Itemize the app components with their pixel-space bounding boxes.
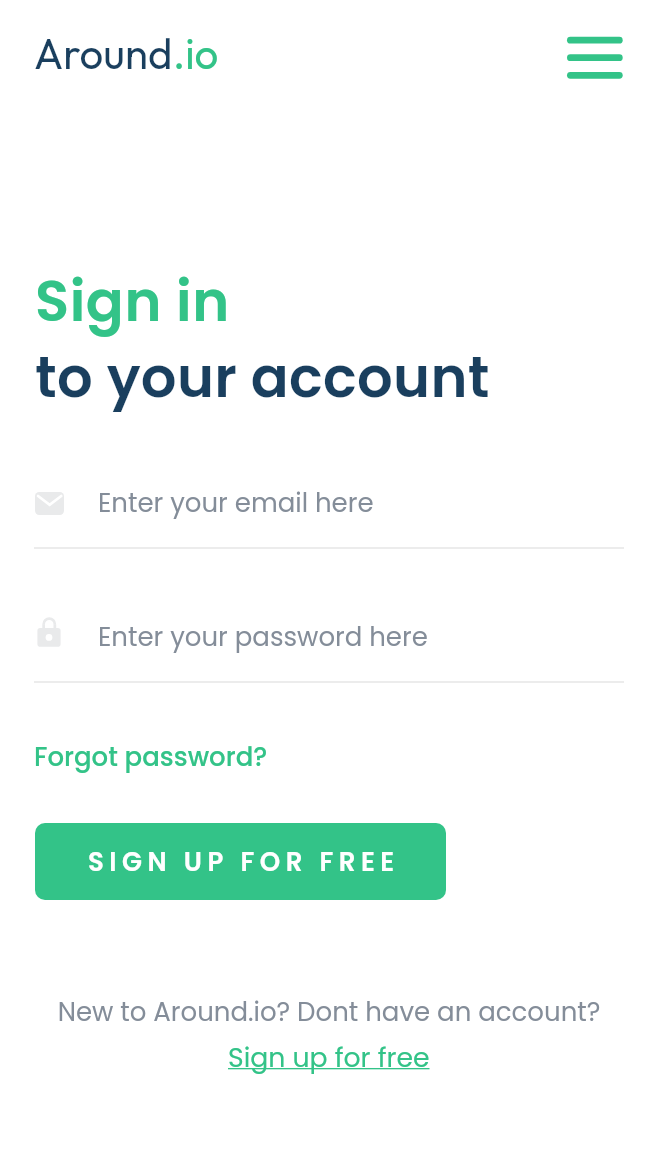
button[interactable]: Forgot password?: [34, 739, 268, 775]
staticText: Forgot password?: [34, 739, 268, 775]
staticText: New to Around.io? Dont have an account?: [0, 994, 658, 1030]
staticText: Enter your password here: [98, 619, 428, 655]
staticText: SIGN UP FOR FREE: [88, 844, 400, 880]
staticText: Around: [34, 27, 173, 80]
staticText: .io: [173, 27, 219, 80]
button[interactable]: Enter your email here: [34, 470, 624, 550]
button[interactable]: SIGN UP FOR FREE: [35, 823, 446, 900]
button[interactable]: Around: [34, 27, 219, 80]
staticText: to your account: [35, 338, 490, 416]
staticText: Sign in: [35, 262, 230, 340]
button[interactable]: Enter your password here: [34, 604, 624, 684]
button[interactable]: Sign up for free: [228, 1039, 430, 1076]
staticText: Enter your email here: [98, 485, 374, 521]
button[interactable]: Menu: [557, 27, 633, 89]
staticText: Sign up for free: [228, 1039, 430, 1076]
